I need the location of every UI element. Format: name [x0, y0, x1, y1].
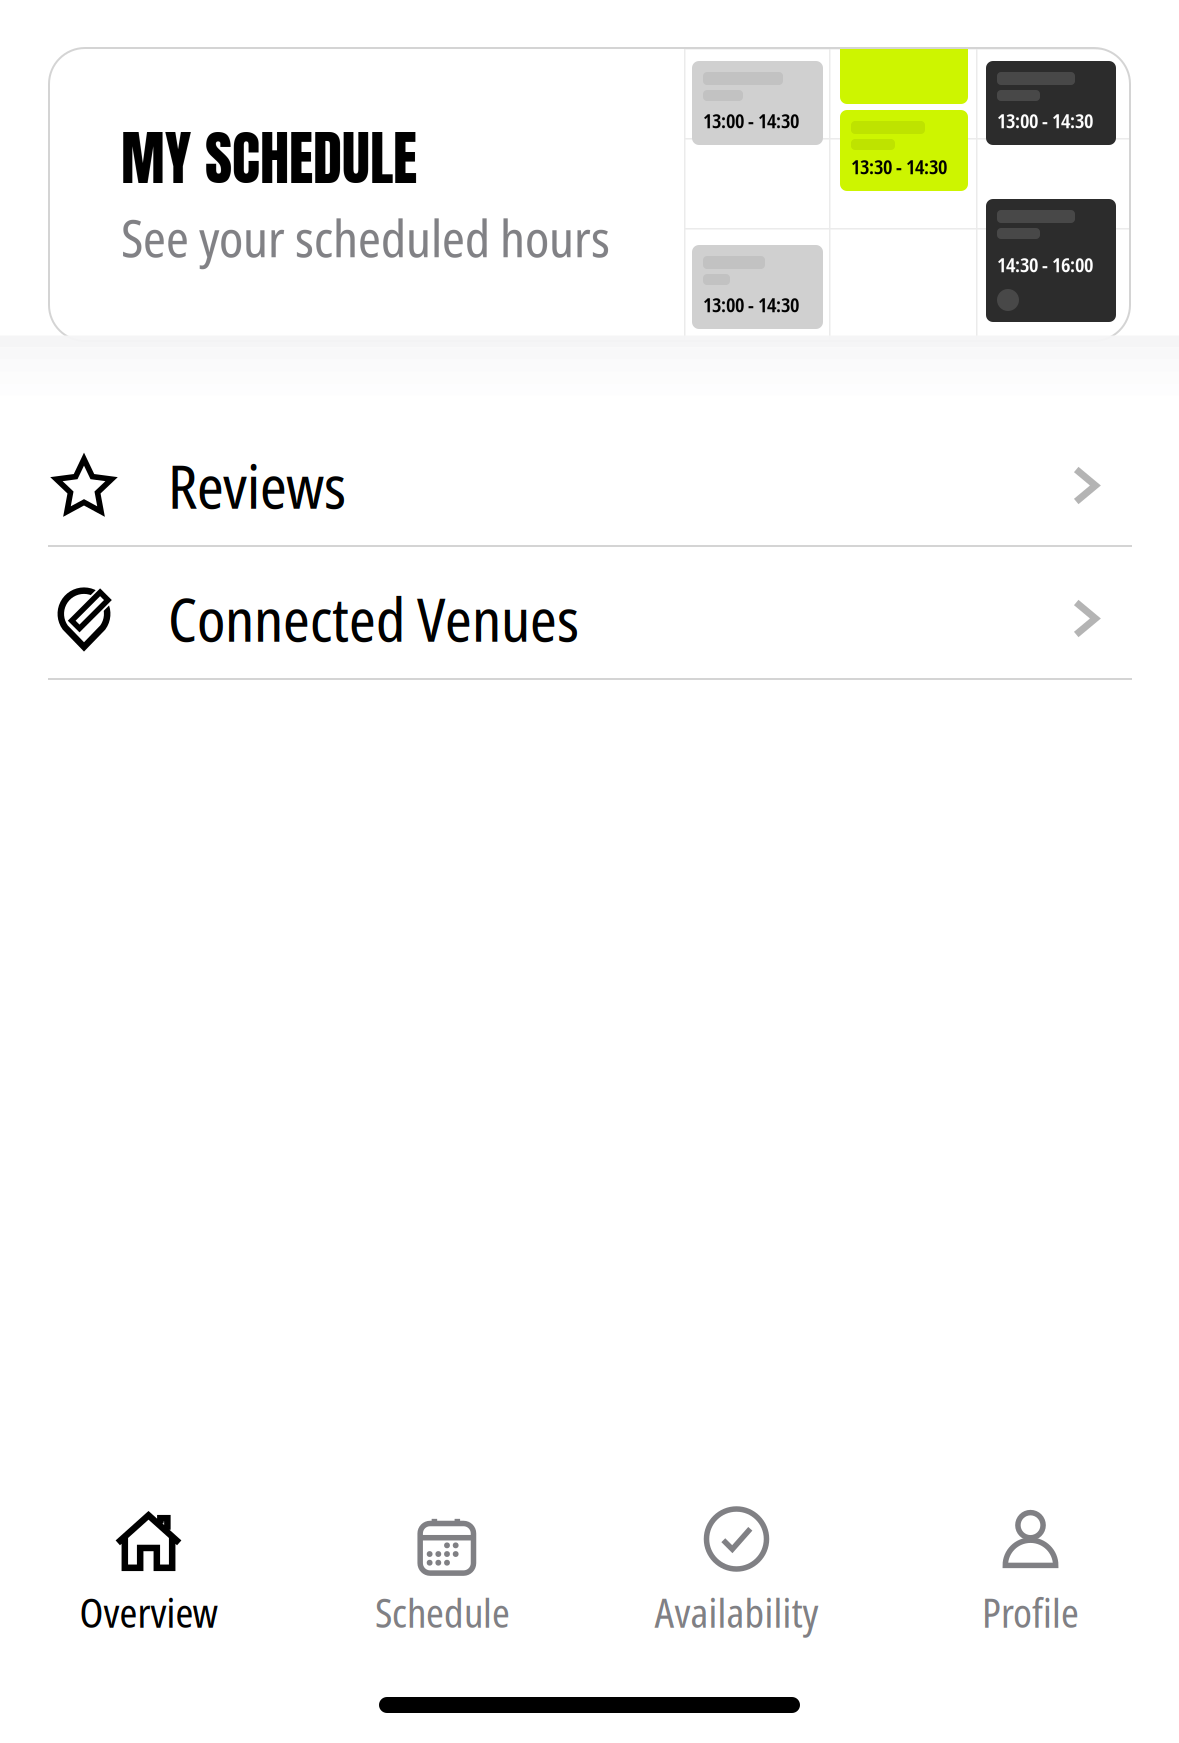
staticText: 13:30 - 14:30: [851, 153, 947, 180]
button[interactable]: Connected Venues: [0, 547, 1179, 678]
button[interactable]: Availability: [589, 1490, 883, 1642]
staticText: 14:30 - 16:00: [997, 251, 1093, 278]
staticText: Availability: [654, 1585, 818, 1639]
staticText: Reviews: [168, 445, 346, 526]
staticText: 13:00 - 14:30: [703, 291, 799, 318]
staticText: Overview: [79, 1585, 217, 1639]
staticText: 13:00 - 14:30: [703, 107, 799, 134]
button[interactable]: Overview: [1, 1490, 295, 1642]
staticText: Profile: [982, 1585, 1079, 1639]
button[interactable]: Schedule: [295, 1490, 589, 1642]
button[interactable]: MY SCHEDULE: [49, 48, 1130, 341]
staticText: MY SCHEDULE: [121, 114, 417, 202]
button[interactable]: Profile: [883, 1490, 1177, 1642]
staticText: 13:00 - 14:30: [997, 107, 1093, 134]
button[interactable]: Reviews: [0, 414, 1179, 545]
staticText: See your scheduled hours: [121, 202, 610, 272]
staticText: Schedule: [375, 1585, 510, 1639]
staticText: Connected Venues: [168, 578, 579, 659]
